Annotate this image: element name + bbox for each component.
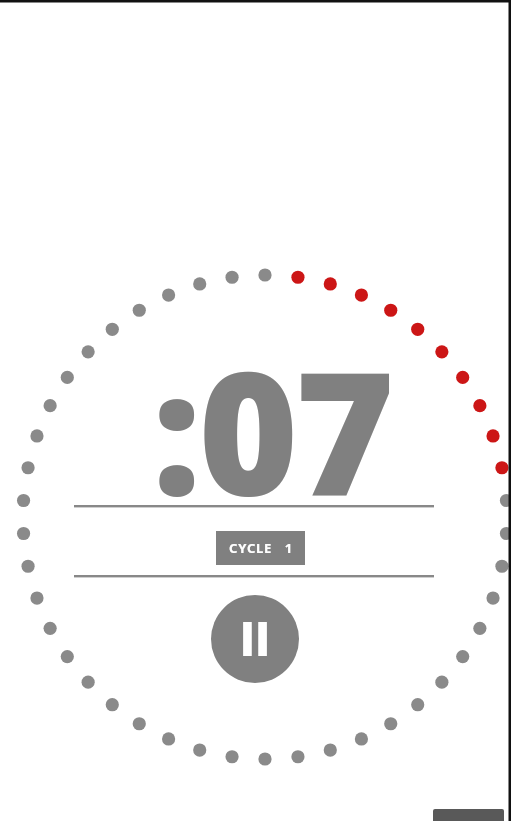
button[interactable]: Pause — [211, 595, 299, 683]
staticText: CYCLE 1 — [229, 539, 293, 557]
staticText: :07 — [152, 313, 392, 545]
button[interactable]: CYCLE 1 — [216, 531, 305, 565]
